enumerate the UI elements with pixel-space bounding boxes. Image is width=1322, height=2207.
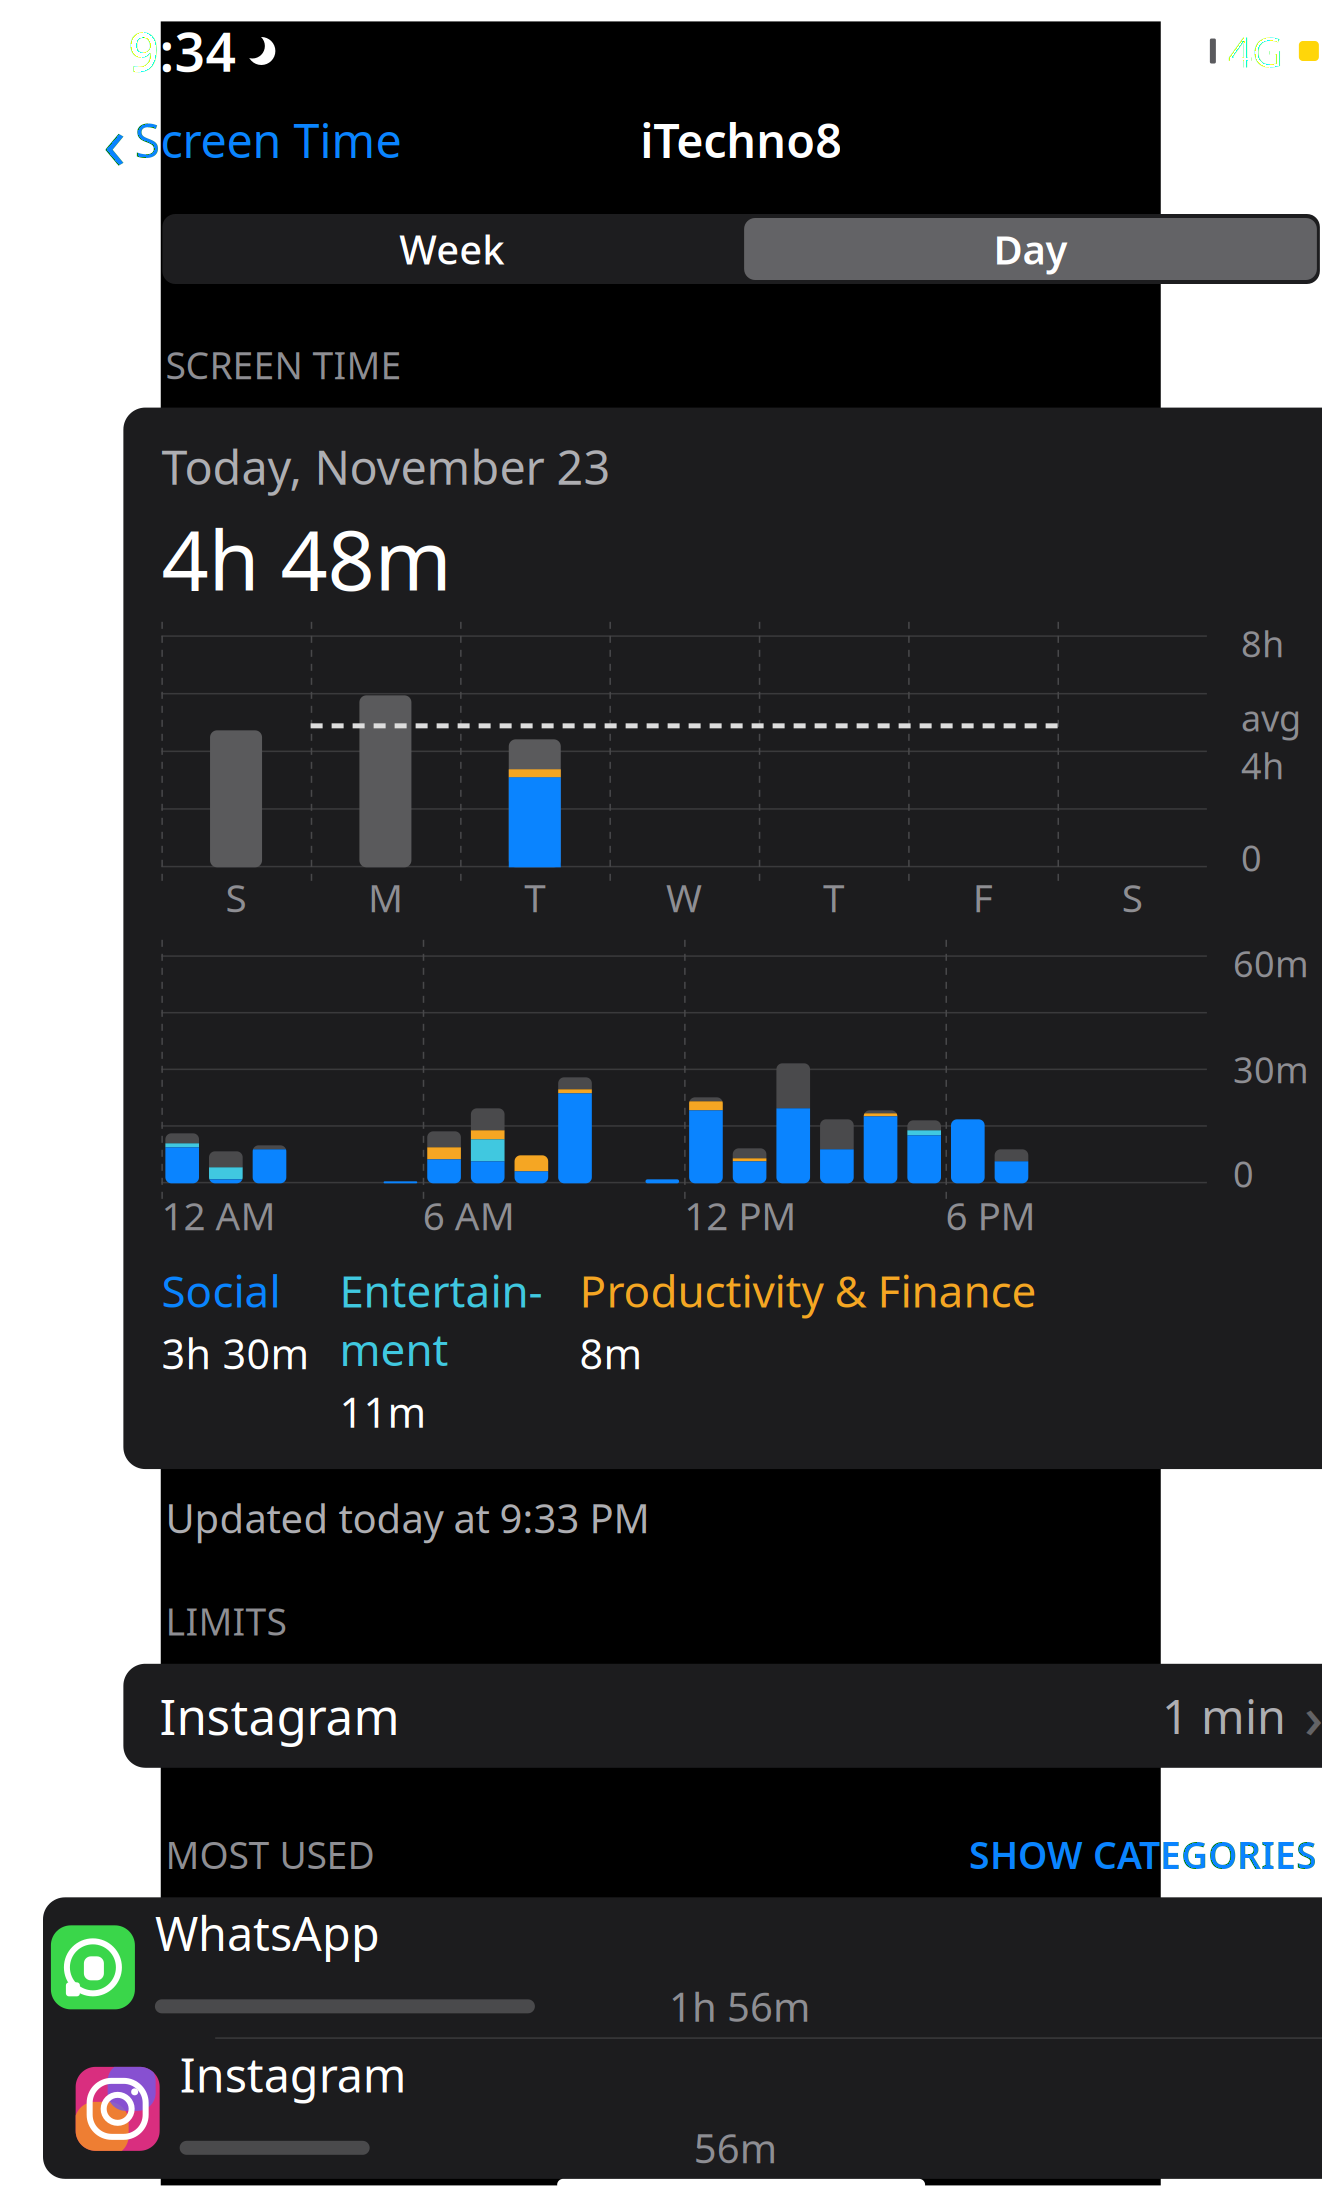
staticText: T xyxy=(524,872,545,923)
staticText: 4G xyxy=(1228,23,1283,79)
staticText: Productivity & Finance xyxy=(579,1261,1036,1320)
staticText: M xyxy=(368,872,403,923)
staticText: W xyxy=(666,872,702,923)
staticText: 4h xyxy=(1241,741,1284,789)
staticText: 9:34 xyxy=(128,16,236,86)
staticText: 12 PM xyxy=(684,1190,796,1241)
button[interactable]: ‹ xyxy=(80,83,401,197)
staticText: Screen Time xyxy=(134,109,401,171)
staticText: 4h 48m xyxy=(161,503,451,613)
staticText: T xyxy=(823,872,844,923)
staticText: S xyxy=(1122,872,1143,923)
staticText: Social xyxy=(161,1261,280,1320)
staticText: MOST USED xyxy=(165,1830,374,1879)
staticText: Day xyxy=(993,222,1067,275)
staticText: LIMITS xyxy=(165,1596,286,1646)
button[interactable]: Day xyxy=(744,218,1317,280)
staticText: Instagram xyxy=(180,2043,407,2105)
staticText: avg xyxy=(1241,693,1301,741)
staticText: 8m xyxy=(579,1326,642,1381)
staticText: 12 AM xyxy=(161,1190,275,1241)
staticText: 1h 56m xyxy=(669,1980,810,2033)
staticText: 0 xyxy=(1233,1149,1254,1197)
button[interactable]: Instagram xyxy=(123,1664,1322,1768)
staticText: 6 AM xyxy=(423,1190,515,1241)
staticText: 3h 30m xyxy=(161,1326,309,1381)
button[interactable]: Week xyxy=(162,218,741,280)
button[interactable]: SHOW CATEGORIES xyxy=(969,1830,1317,1879)
staticText: Instagram xyxy=(159,1683,399,1748)
button[interactable]: Instagram xyxy=(59,2039,1322,2179)
staticText: Week xyxy=(399,222,504,275)
staticText: F xyxy=(973,872,993,923)
button[interactable]: WhatsApp xyxy=(43,1897,1322,2037)
staticText: 1 min xyxy=(1162,1685,1286,1747)
staticText: iTechno8 xyxy=(640,109,842,171)
staticText: 6 PM xyxy=(945,1190,1035,1241)
staticText: SCREEN TIME xyxy=(165,340,401,390)
staticText: WhatsApp xyxy=(155,1902,380,1964)
staticText: 30m xyxy=(1233,1045,1309,1093)
staticText: 56m xyxy=(694,2121,777,2174)
staticText: › xyxy=(1304,1677,1322,1755)
staticText: SHOW CATEGORIES xyxy=(969,1830,1317,1879)
staticText: 0 xyxy=(1241,833,1262,881)
staticText: 60m xyxy=(1233,939,1309,987)
staticText: Entertainment xyxy=(339,1261,542,1378)
staticText: S xyxy=(226,872,247,923)
staticText: 11m xyxy=(339,1384,426,1439)
staticText: ‹ xyxy=(102,89,126,191)
staticText: Updated today at 9:33 PM xyxy=(165,1491,649,1544)
staticText: 8h xyxy=(1241,619,1284,667)
staticText: Today, November 23 xyxy=(161,436,610,498)
